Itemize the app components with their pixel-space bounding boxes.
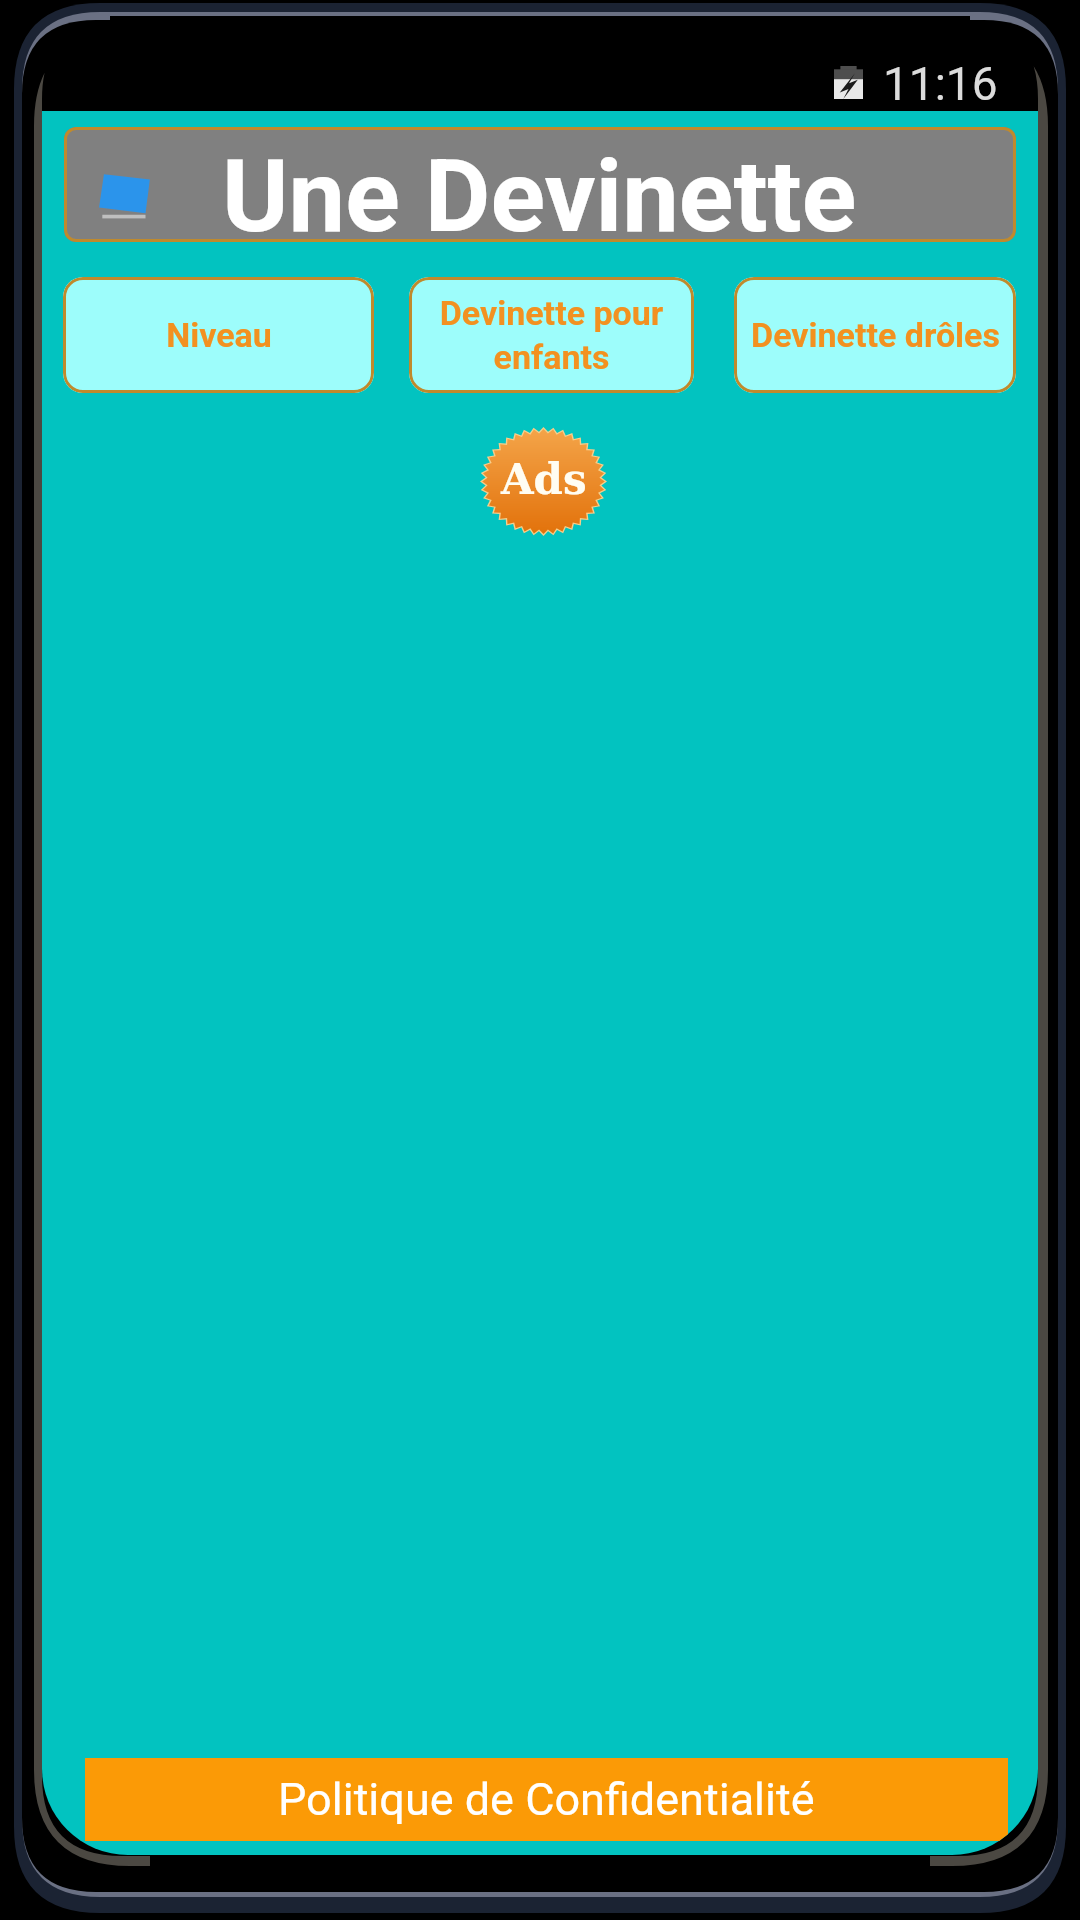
button[interactable]: Devinette pour enfants	[409, 277, 694, 393]
button[interactable]: Ads	[480, 427, 607, 536]
button[interactable]: Devinette drôles	[734, 277, 1016, 393]
button[interactable]: Une Devinette	[64, 127, 1016, 242]
staticText: Ads	[501, 455, 587, 504]
button[interactable]: Politique de Confidentialité	[85, 1758, 1008, 1841]
staticText: Une Devinette	[222, 137, 857, 242]
staticText: 11:16	[883, 57, 998, 111]
staticText: Niveau	[166, 315, 272, 355]
staticText: Politique de Confidentialité	[278, 1773, 815, 1826]
staticText: Devinette pour enfants	[415, 293, 688, 377]
button[interactable]: Niveau	[63, 277, 374, 393]
staticText: Devinette drôles	[751, 315, 1000, 355]
